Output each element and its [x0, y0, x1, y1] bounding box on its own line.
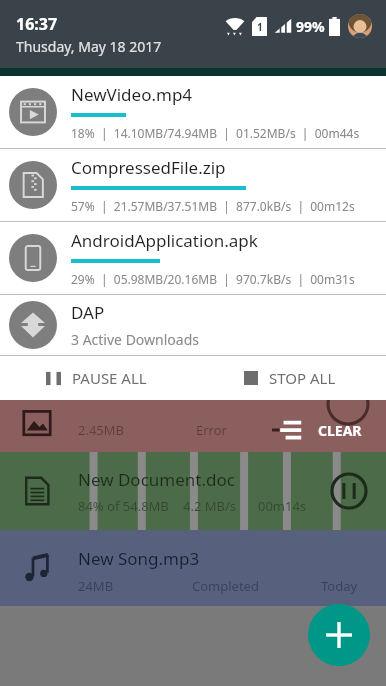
staticText: 3 Active Downloads: [71, 330, 199, 349]
button[interactable]: AndroidApplication.apk: [0, 222, 386, 294]
staticText: New Song.mp3: [78, 547, 200, 570]
staticText: CompressedFile.zip: [71, 156, 226, 179]
button[interactable]: DAP: [0, 295, 386, 355]
button[interactable]: New Song.mp3: [0, 530, 386, 606]
button[interactable]: NewVideo.mp4: [0, 76, 386, 148]
staticText: NewVideo.mp4: [71, 83, 193, 106]
staticText: 29% | 05.98MB/20.16MB | 970.7kB/s | 00m3…: [71, 271, 355, 287]
staticText: 57% | 21.57MB/37.51MB | 877.0kB/s | 00m1…: [71, 198, 355, 214]
staticText: DAP: [71, 301, 105, 324]
button[interactable]: New Document.doc: [0, 452, 386, 530]
button[interactable]: Pause download: [330, 472, 368, 510]
staticText: New Document.doc: [78, 468, 235, 491]
staticText: AndroidApplication.apk: [71, 229, 258, 252]
staticText: 2.45MB: [78, 421, 125, 439]
staticText: 1: [257, 20, 263, 34]
staticText: PAUSE ALL: [72, 368, 147, 388]
staticText: 24MB: [78, 577, 114, 595]
staticText: STOP ALL: [269, 368, 336, 388]
staticText: 16:37: [16, 13, 58, 35]
button[interactable]: CompressedFile.zip: [0, 149, 386, 221]
button[interactable]: PAUSE ALL: [0, 356, 193, 400]
staticText: Completed: [192, 577, 259, 595]
staticText: Error: [196, 421, 227, 439]
staticText: 4.2 MB/s: [183, 497, 237, 515]
staticText: 99%: [296, 17, 325, 36]
button[interactable]: Add download: [308, 604, 370, 666]
button[interactable]: STOP ALL: [193, 356, 386, 400]
staticText: 84% of 54.8MB: [78, 497, 169, 515]
button[interactable]: Profile: [348, 14, 372, 38]
staticText: 18% | 14.10MB/74.94MB | 01.52MB/s | 00m4…: [71, 125, 360, 141]
staticText: 00m14s: [258, 497, 307, 515]
staticText: Thusday, May 18 2017: [16, 37, 162, 56]
button[interactable]: 2.45MB: [0, 396, 386, 452]
staticText: CLEAR: [318, 421, 362, 440]
staticText: Today: [321, 577, 358, 595]
